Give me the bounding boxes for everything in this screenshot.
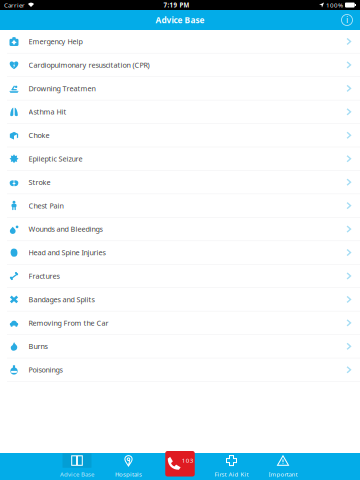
button[interactable]: Call 103 emergency <box>154 451 206 480</box>
staticText: Choke <box>28 130 49 140</box>
staticText: Head and Spine Injuries <box>28 248 105 257</box>
button[interactable]: Important <box>257 451 309 480</box>
staticText: Emergency Help <box>28 37 82 46</box>
button[interactable]: Emergency Help <box>0 30 360 53</box>
staticText: Carrier <box>4 1 25 9</box>
staticText: Hospitals <box>115 470 142 478</box>
staticText: 7:19 PM <box>163 1 189 9</box>
button[interactable]: Hospitals <box>103 451 154 480</box>
button[interactable]: Cardiopulmonary resuscitation (CPR) <box>0 53 360 77</box>
staticText: 103 <box>182 456 194 465</box>
button[interactable]: Asthma Hit <box>0 100 360 124</box>
button[interactable]: Poisonings <box>0 358 360 382</box>
staticText: Poisonings <box>28 365 62 375</box>
staticText: Chest Pain <box>28 201 63 210</box>
button[interactable]: Bandages and Splits <box>0 288 360 311</box>
button[interactable]: Removing From the Car <box>0 311 360 335</box>
staticText: Asthma Hit <box>28 107 66 117</box>
staticText: Important <box>268 470 297 478</box>
button[interactable]: Drowning Treatmen <box>0 77 360 100</box>
staticText: Burns <box>28 341 47 351</box>
staticText: Stroke <box>28 177 50 187</box>
staticText: Removing From the Car <box>28 318 108 328</box>
button[interactable]: Chest Pain <box>0 194 360 217</box>
button[interactable]: First Aid Kit <box>206 451 257 480</box>
button[interactable]: Head and Spine Injuries <box>0 241 360 264</box>
staticText: Advice Base <box>60 470 94 478</box>
staticText: Epileptic Seizure <box>28 154 82 164</box>
staticText: Wounds and Bleedings <box>28 224 102 234</box>
staticText: Drowning Treatmen <box>28 83 95 93</box>
button[interactable]: Info <box>334 10 360 30</box>
staticText: 100% <box>326 1 343 9</box>
button[interactable]: Choke <box>0 124 360 147</box>
staticText: First Aid Kit <box>214 470 248 478</box>
staticText: Cardiopulmonary resuscitation (CPR) <box>28 60 149 70</box>
button[interactable]: Stroke <box>0 171 360 194</box>
staticText: Advice Base <box>155 14 204 26</box>
staticText: Bandages and Splits <box>28 294 94 304</box>
button[interactable]: Burns <box>0 335 360 358</box>
staticText: Fractures <box>28 271 59 281</box>
staticText: i <box>346 15 348 25</box>
button[interactable]: Advice Base <box>51 451 103 480</box>
button[interactable]: Wounds and Bleedings <box>0 218 360 241</box>
button[interactable]: Epileptic Seizure <box>0 147 360 171</box>
button[interactable]: Fractures <box>0 264 360 288</box>
